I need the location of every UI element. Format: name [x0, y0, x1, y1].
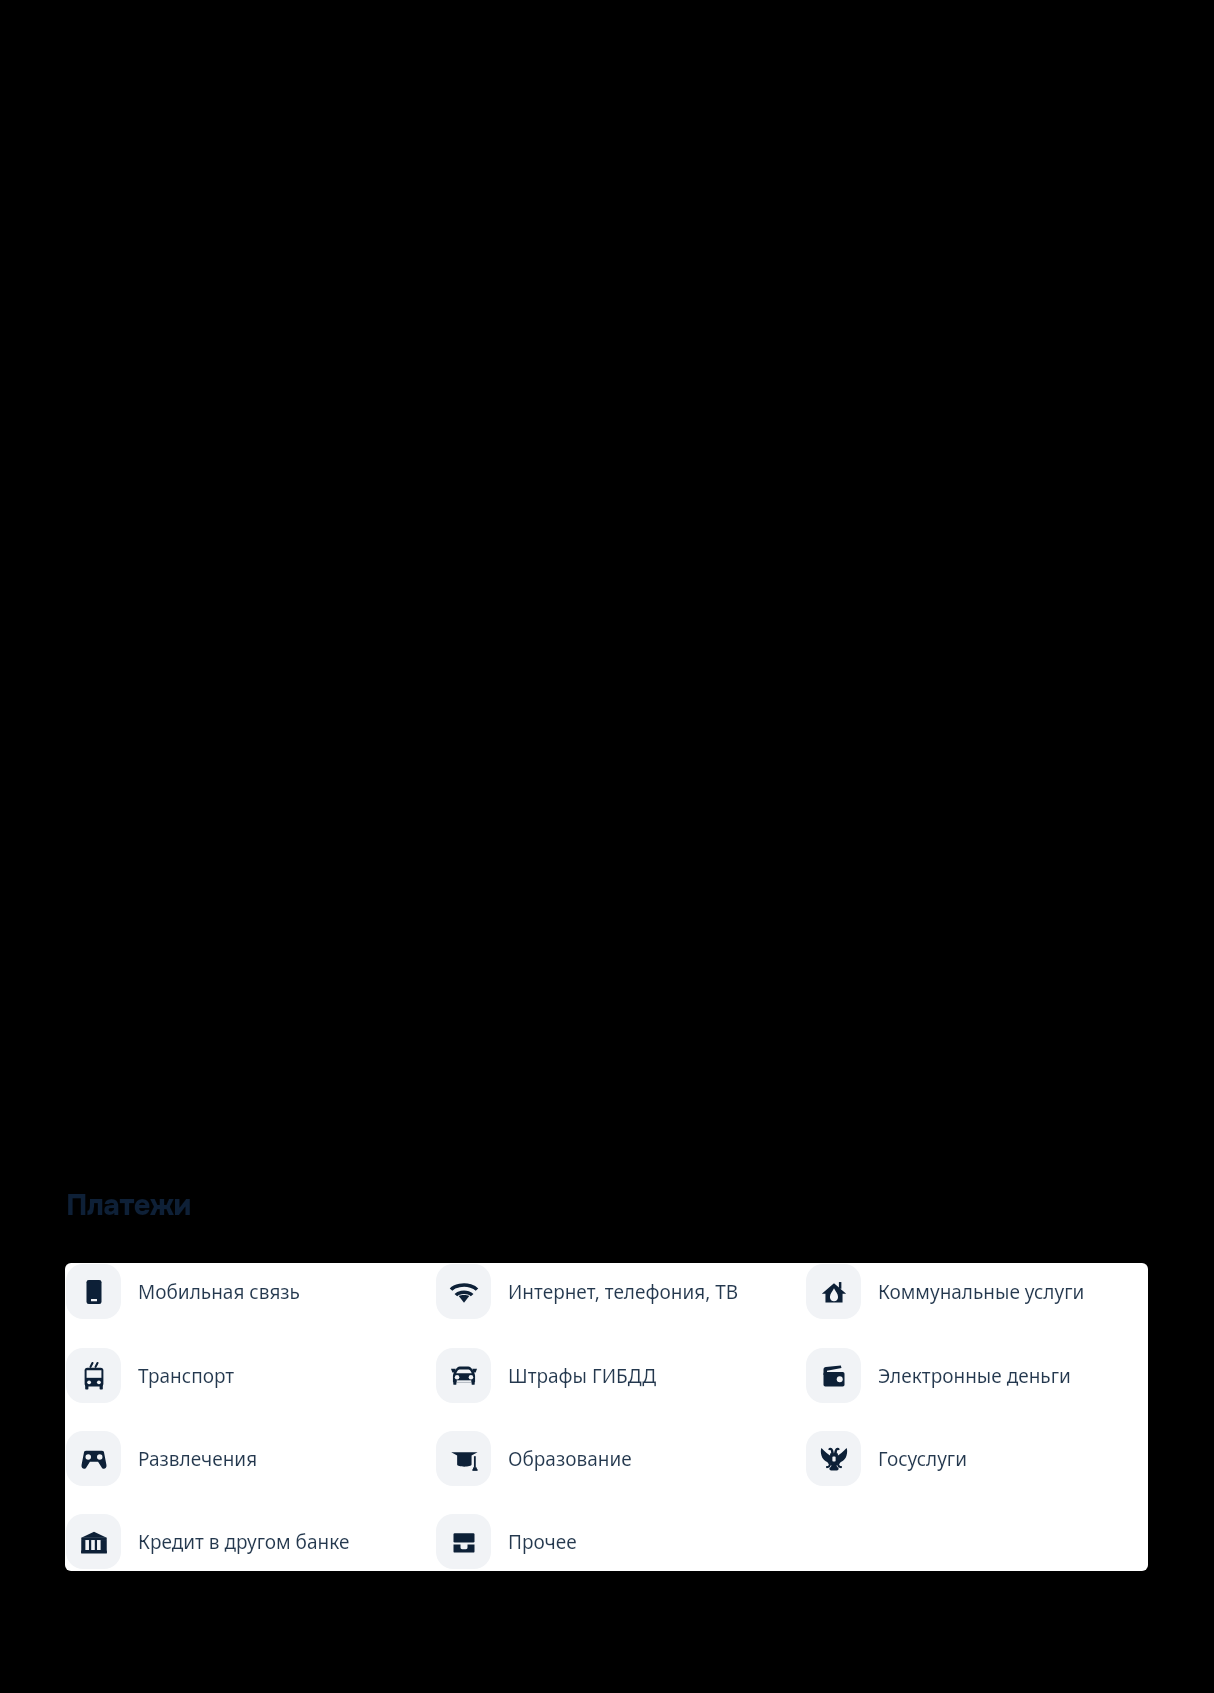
- button[interactable]: Кредит в другом банке: [65, 1514, 435, 1569]
- staticText: Госуслуги: [878, 1446, 967, 1472]
- staticText: Интернет, телефония, ТВ: [508, 1279, 739, 1305]
- button[interactable]: Госуслуги: [805, 1431, 1148, 1486]
- button[interactable]: Прочее: [435, 1514, 805, 1569]
- staticText: Коммунальные услуги: [878, 1279, 1085, 1305]
- button[interactable]: Развлечения: [65, 1431, 435, 1486]
- button[interactable]: Мобильная связь: [65, 1264, 435, 1319]
- staticText: Образование: [508, 1446, 632, 1472]
- staticText: Электронные деньги: [878, 1363, 1071, 1389]
- staticText: Развлечения: [138, 1446, 258, 1472]
- staticText: Платежи: [66, 1187, 191, 1224]
- button[interactable]: Транспорт: [65, 1348, 435, 1403]
- button[interactable]: Образование: [435, 1431, 805, 1486]
- staticText: Кредит в другом банке: [138, 1529, 350, 1555]
- button[interactable]: Интернет, телефония, ТВ: [435, 1264, 805, 1319]
- staticText: Мобильная связь: [138, 1279, 300, 1305]
- staticText: Транспорт: [138, 1363, 235, 1389]
- staticText: Прочее: [508, 1529, 577, 1555]
- staticText: Штрафы ГИБДД: [508, 1363, 657, 1389]
- button[interactable]: Коммунальные услуги: [805, 1264, 1148, 1319]
- button[interactable]: Штрафы ГИБДД: [435, 1348, 805, 1403]
- button[interactable]: Электронные деньги: [805, 1348, 1148, 1403]
